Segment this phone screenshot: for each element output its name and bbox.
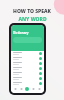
- button[interactable]: Nav: [38, 88, 41, 91]
- button[interactable]: Add: [25, 87, 29, 91]
- button[interactable]: [13, 37, 42, 43]
- button[interactable]: Nav: [32, 88, 35, 91]
- button[interactable]: [11, 61, 44, 66]
- staticText: HOW TO SPEAK: [13, 8, 51, 15]
- button[interactable]: Nav: [20, 88, 23, 91]
- staticText: Dictionary: [13, 31, 29, 35]
- button[interactable]: [11, 76, 44, 81]
- button[interactable]: [11, 56, 44, 61]
- button[interactable]: [11, 81, 44, 86]
- button[interactable]: Nav: [14, 88, 17, 91]
- button[interactable]: [11, 71, 44, 76]
- button[interactable]: [11, 66, 44, 71]
- button[interactable]: [11, 51, 44, 56]
- staticText: ANY WORD: [18, 16, 47, 23]
- button[interactable]: [11, 86, 44, 91]
